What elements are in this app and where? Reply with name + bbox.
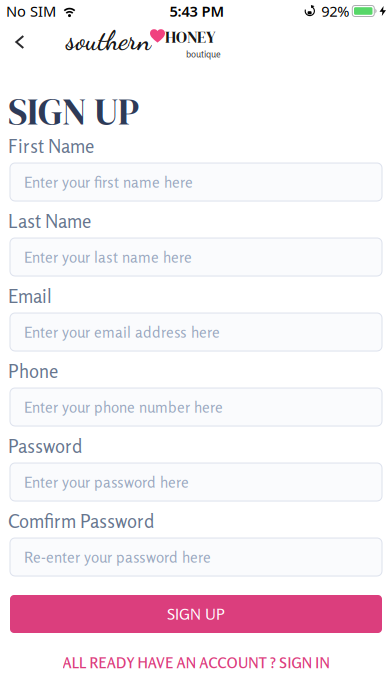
staticText: boutique: [186, 48, 221, 60]
staticText: First Name: [8, 135, 94, 157]
staticText: SIGN UP: [167, 605, 225, 623]
staticText: Enter your first name here: [24, 173, 193, 191]
staticText: Enter your email address here: [24, 323, 220, 341]
staticText: Phone: [8, 360, 58, 382]
staticText: Enter your last name here: [24, 248, 192, 266]
staticText: Last Name: [8, 210, 91, 232]
button[interactable]: Comfirm Password text field: [10, 538, 382, 576]
button[interactable]: ALL READY HAVE AN ACCOUNT ? SIGN IN: [63, 654, 329, 672]
staticText: Comfirm Password: [8, 510, 154, 532]
button[interactable]: Back: [0, 35, 35, 49]
staticText: southern: [66, 24, 151, 57]
button[interactable]: Password text field: [10, 463, 382, 501]
staticText: Email: [8, 285, 52, 307]
staticText: Password: [8, 435, 82, 457]
staticText: Enter your phone number here: [24, 398, 223, 416]
staticText: 5:43 PM: [169, 1, 224, 21]
button[interactable]: First Name text field: [10, 163, 382, 201]
staticText: Enter your password here: [24, 473, 189, 491]
button[interactable]: Phone text field: [10, 388, 382, 426]
staticText: No SIM: [6, 1, 56, 21]
staticText: Re-enter your password here: [24, 548, 211, 566]
staticText: 92%: [321, 1, 349, 21]
button[interactable]: Last Name text field: [10, 238, 382, 276]
staticText: HONEY: [165, 26, 216, 48]
staticText: ALL READY HAVE AN ACCOUNT ? SIGN IN: [63, 654, 329, 672]
staticText: SIGN UP: [8, 86, 139, 137]
button[interactable]: Email text field: [10, 313, 382, 351]
button[interactable]: SIGN UP: [10, 595, 382, 633]
